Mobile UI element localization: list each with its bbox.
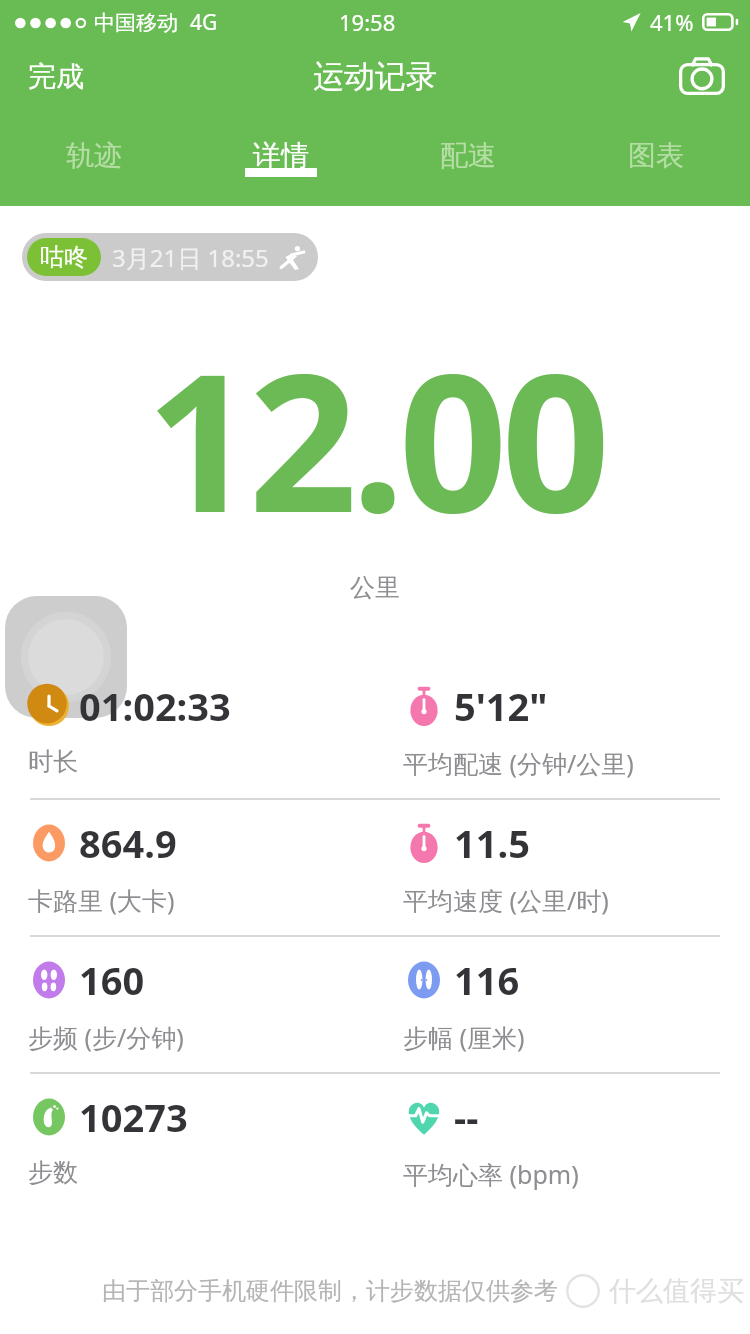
button[interactable]: 864.9 xyxy=(28,800,375,917)
staticText: 平均速度 (公里/时) xyxy=(403,883,609,917)
button[interactable]: 160 xyxy=(28,937,375,1054)
staticText: 公里 xyxy=(350,572,400,603)
staticText: 116 xyxy=(454,954,520,1006)
staticText: 5'12" xyxy=(454,680,548,732)
button[interactable]: 咕咚 xyxy=(22,233,318,281)
staticText: 什么值得买 xyxy=(609,1274,744,1308)
staticText: 3月21日 18:55 xyxy=(112,241,269,274)
staticText: 运动记录 xyxy=(313,57,437,96)
button[interactable]: 01:02:33 xyxy=(28,663,375,777)
staticText: 平均配速 (分钟/公里) xyxy=(403,746,634,780)
staticText: 步频 (步/分钟) xyxy=(28,1020,184,1054)
staticText: 卡路里 (大卡) xyxy=(28,883,175,917)
staticText: 160 xyxy=(79,954,145,1006)
staticText: 平均心率 (bpm) xyxy=(403,1157,579,1191)
staticText: 咕咚 xyxy=(40,242,88,272)
staticText: 步数 xyxy=(28,1157,78,1188)
staticText: 4G xyxy=(190,8,218,37)
staticText: 配速 xyxy=(440,138,496,173)
staticText: 图表 xyxy=(628,138,684,173)
staticText: 详情 xyxy=(253,138,309,173)
staticText: 864.9 xyxy=(79,817,177,869)
staticText: 完成 xyxy=(28,59,84,94)
button[interactable]: 轨迹 xyxy=(0,142,187,177)
button[interactable]: -- xyxy=(403,1074,750,1191)
staticText: 41% xyxy=(650,7,694,37)
button[interactable]: 图表 xyxy=(562,142,750,177)
button[interactable]: 10273 xyxy=(28,1074,375,1188)
staticText: 由于部分手机硬件限制，计步数据仅供参考 xyxy=(102,1276,558,1306)
button[interactable]: Camera xyxy=(674,48,730,104)
button[interactable]: 完成 xyxy=(18,51,94,102)
staticText: 时长 xyxy=(28,746,78,777)
staticText: 01:02:33 xyxy=(79,680,231,732)
button[interactable]: 11.5 xyxy=(403,800,750,917)
staticText: 19:58 xyxy=(339,7,396,37)
button[interactable]: 配速 xyxy=(374,142,562,177)
staticText: 10273 xyxy=(79,1091,188,1143)
button[interactable]: 5'12" xyxy=(403,663,750,780)
button[interactable]: 详情 xyxy=(187,142,374,177)
staticText: 12.00 xyxy=(146,309,605,568)
staticText: 中国移动 xyxy=(94,10,178,36)
staticText: 步幅 (厘米) xyxy=(403,1020,525,1054)
staticText: 轨迹 xyxy=(66,138,122,173)
staticText: 11.5 xyxy=(454,817,530,869)
staticText: -- xyxy=(454,1091,479,1143)
button[interactable]: 116 xyxy=(403,937,750,1054)
